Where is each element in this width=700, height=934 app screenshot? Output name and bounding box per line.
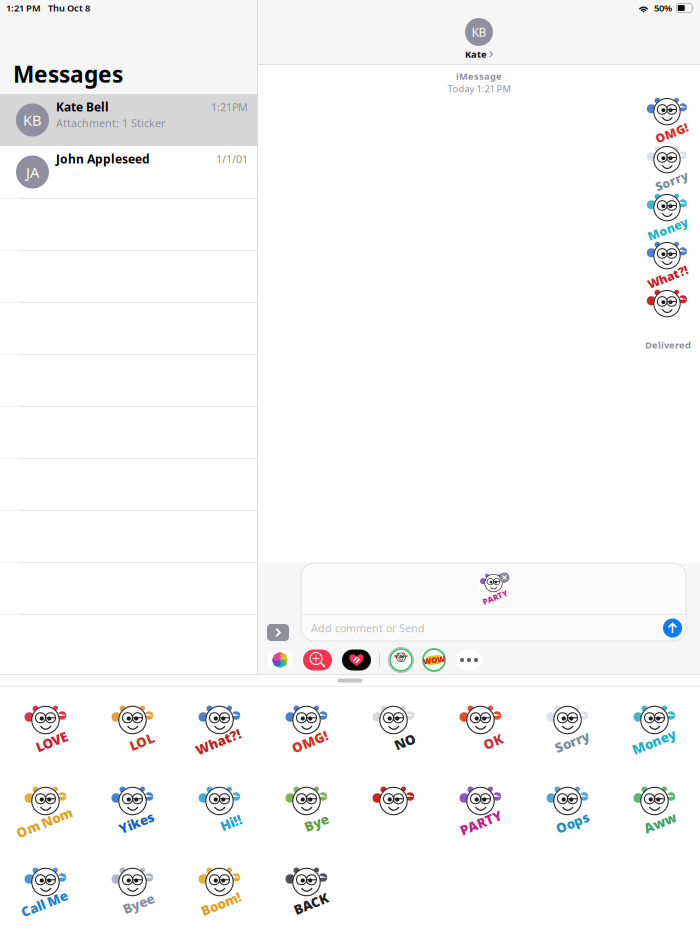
staticText: LOVE [35,733,68,750]
button[interactable]: BACK [263,850,350,931]
button[interactable]: Hi!! [176,769,263,850]
staticText: WOW [423,655,445,665]
button[interactable] [350,769,437,850]
staticText: 1:21PM [211,100,248,114]
button[interactable]: Send [663,618,682,637]
staticText: Kate Bell [56,99,109,115]
staticText: 50% [654,2,672,14]
staticText: 1:21 PM [6,2,41,14]
staticText: Bye [304,814,329,831]
staticText: Thu Oct 8 [48,2,90,14]
button[interactable]: PARTY [437,769,524,850]
button[interactable]: Om Nom [2,769,89,850]
staticText: PARTY [482,592,508,603]
staticText: What?! [194,733,242,750]
button[interactable]: Wow stickers [422,648,446,672]
staticText: iMessage [456,70,502,82]
button[interactable]: Sorry [524,688,611,769]
staticText: KB [471,24,486,40]
staticText: NO [394,733,416,750]
staticText: Aww [643,814,677,831]
staticText: Byee [122,895,155,912]
button[interactable]: Bye [263,769,350,850]
staticText: Call Me [20,895,69,912]
button[interactable]: JA [0,146,257,198]
button[interactable]: What?! [176,688,263,769]
button[interactable]: More apps [456,649,482,670]
staticText: OMG! [655,125,689,141]
button[interactable]: Call Me [2,850,89,931]
button[interactable]: App Store [303,649,332,670]
staticText: Sorry [554,733,590,750]
staticText: Messages [13,59,123,89]
staticText: KB [23,110,42,130]
staticText: Money [647,221,689,237]
staticText: Money [631,733,677,750]
staticText: OK [483,733,503,750]
staticText: LOL [129,733,155,750]
staticText: Sorry [655,173,689,189]
staticText: Delivered [645,339,691,351]
staticText: Add comment or Send [311,621,425,635]
staticText: Hi!! [220,814,242,831]
staticText: John Appleseed [56,151,150,167]
button[interactable]: NO [350,688,437,769]
button[interactable]: Oops [524,769,611,850]
staticText: Boom! [200,895,242,912]
staticText: Yikes [118,814,155,831]
staticText: Oops [555,814,590,831]
button[interactable]: OMG! [263,688,350,769]
staticText: Attachment: 1 Sticker [56,116,165,130]
button[interactable]: Yikes [89,769,176,850]
button[interactable]: LOVE [2,688,89,769]
button[interactable]: LOL [89,688,176,769]
staticText: OMG! [291,733,329,750]
button[interactable]: Aww [611,769,698,850]
button[interactable]: Money [611,688,698,769]
button[interactable]: Sticker pack [388,647,414,673]
button[interactable]: OK [437,688,524,769]
staticText: What?! [647,269,689,285]
staticText: Today 1:21 PM [447,82,510,95]
staticText: JA [26,162,39,182]
staticText: BACK [293,895,329,912]
button[interactable]: KB [0,94,257,146]
button[interactable]: Show apps [267,624,289,641]
button[interactable]: Byee [89,850,176,931]
staticText: Kate [465,48,487,60]
staticText: 1/1/01 [216,152,248,166]
button[interactable]: KB [465,18,493,60]
button[interactable]: Music [342,649,371,670]
staticText: Om Nom [15,814,74,831]
button[interactable]: Photos [267,649,293,670]
button[interactable]: Boom! [176,850,263,931]
staticText: PARTY [459,814,503,831]
